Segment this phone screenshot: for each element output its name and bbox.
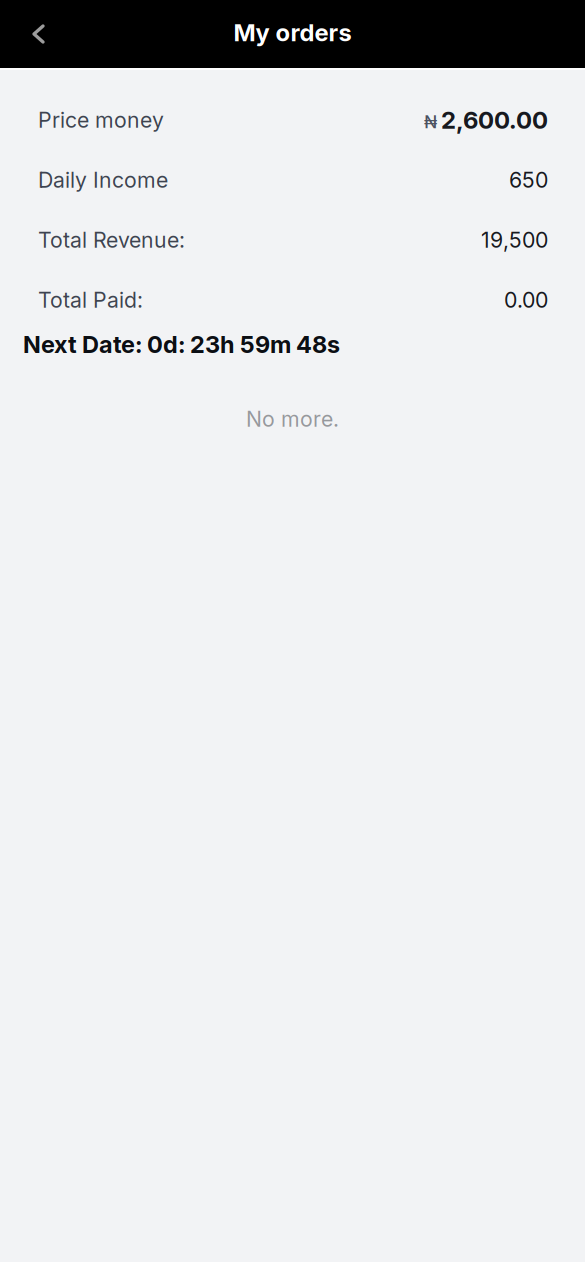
staticText: No more. [246,406,339,432]
staticText: 19,500 [481,227,548,253]
staticText: 650 [509,167,548,193]
staticText: Total Revenue: [38,227,185,253]
staticText: 2,600.00 [441,105,548,134]
staticText: 0.00 [504,287,548,313]
staticText: Price money [38,107,164,133]
staticText: Next Date: 0d: 23h 59m 48s [23,330,340,359]
staticText: Total Paid: [38,287,143,313]
button[interactable]: Back [0,0,67,68]
staticText: ₦ [424,111,437,132]
staticText: My orders [233,18,351,47]
staticText: Daily Income [38,167,168,193]
